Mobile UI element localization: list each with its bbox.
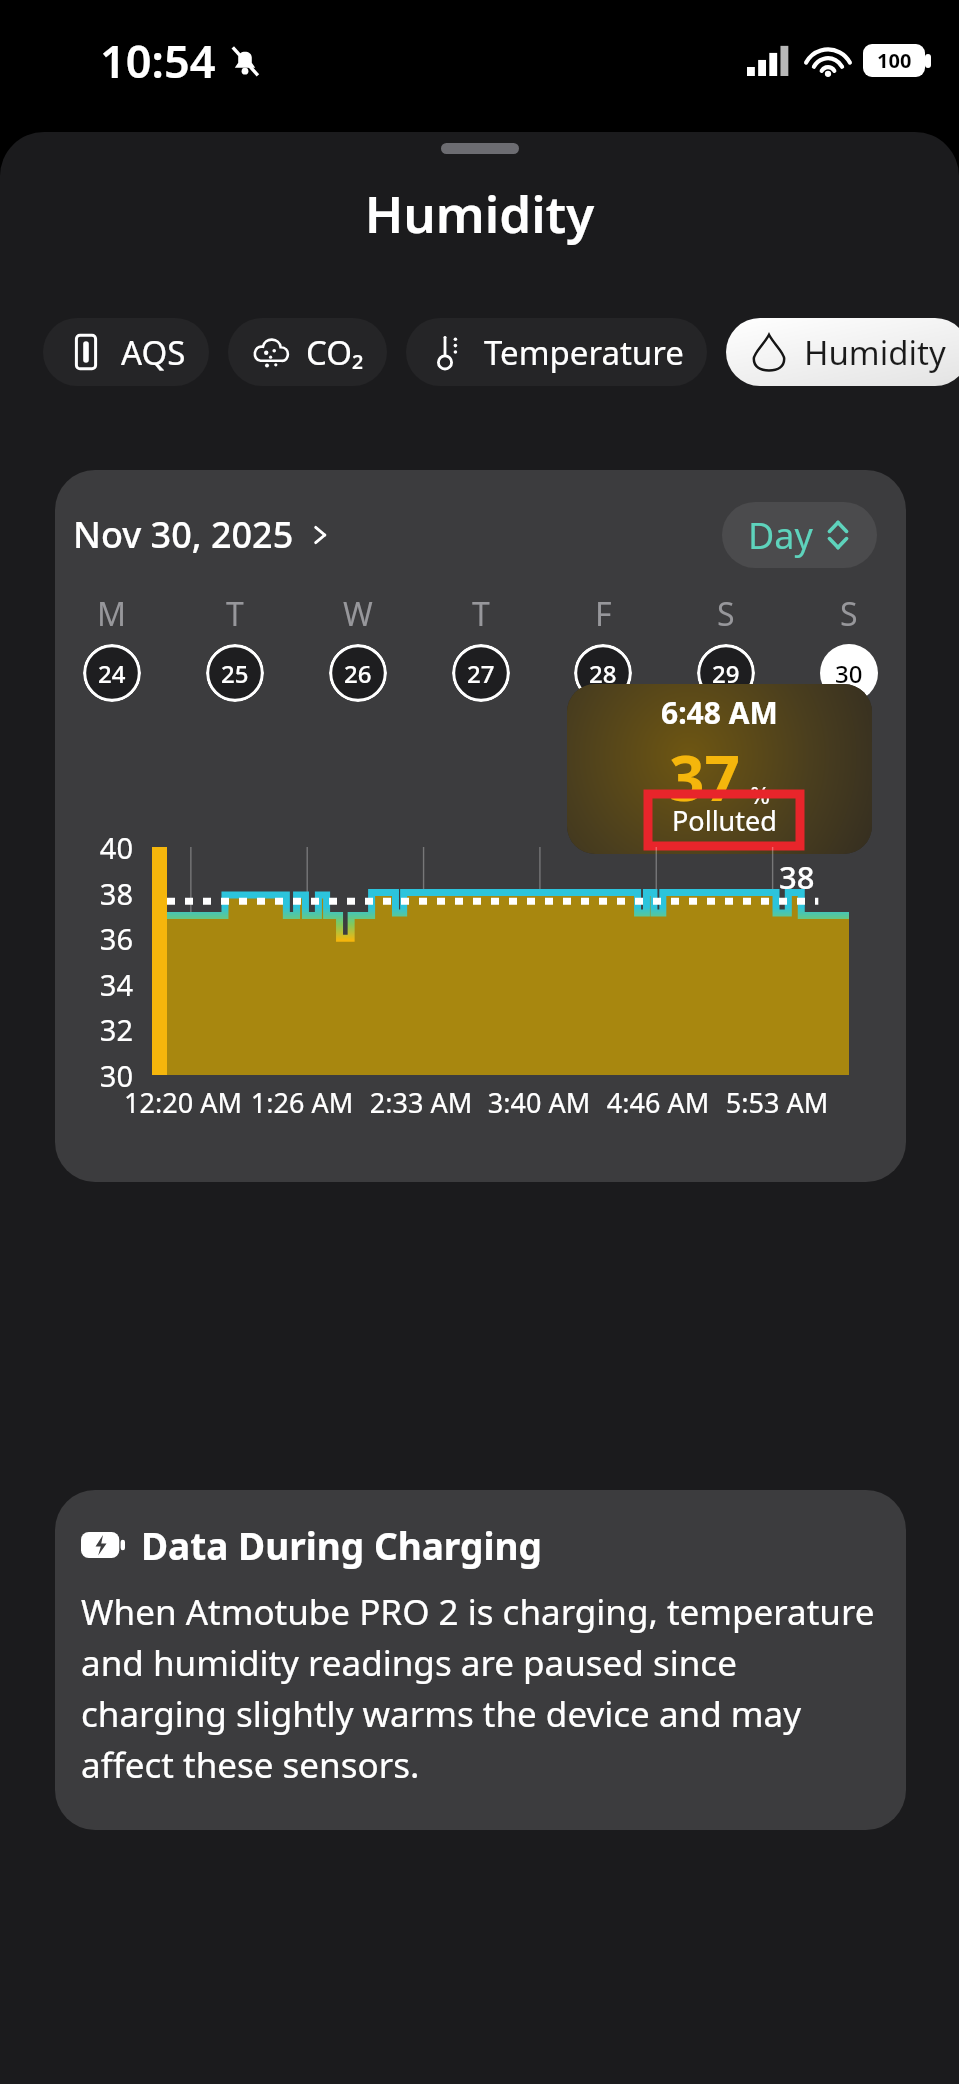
- staticText: 38: [75, 874, 133, 913]
- staticText: Humidity: [0, 178, 959, 247]
- staticText: 100: [877, 47, 912, 74]
- staticText: When Atmotube PRO 2 is charging, tempera…: [81, 1588, 880, 1788]
- staticText: 6:48 AM: [661, 692, 778, 733]
- staticText: 37: [669, 735, 740, 819]
- other: Charging: [81, 1532, 125, 1558]
- staticText: 30: [835, 657, 863, 690]
- staticText: Day: [748, 511, 813, 560]
- staticText: S: [840, 592, 858, 636]
- staticText: 24: [98, 657, 126, 690]
- staticText: CO₂: [306, 330, 364, 375]
- button[interactable]: Humidity: [726, 318, 959, 386]
- staticText: Temperature: [484, 330, 684, 375]
- staticText: 10:54: [100, 30, 216, 91]
- staticText: 26: [344, 657, 372, 690]
- staticText: 28: [589, 657, 617, 690]
- staticText: 3:40 AM: [469, 1084, 609, 1121]
- button[interactable]: W: [313, 592, 403, 702]
- button[interactable]: Temperature: [406, 318, 707, 386]
- button[interactable]: T: [190, 592, 280, 702]
- staticText: 38: [779, 856, 815, 898]
- staticText: S: [717, 592, 735, 636]
- button[interactable]: S: [681, 592, 771, 702]
- staticText: Polluted: [672, 802, 777, 839]
- staticText: T: [472, 592, 490, 636]
- staticText: 25: [221, 657, 249, 690]
- staticText: 1:26 AM: [232, 1084, 372, 1121]
- staticText: Humidity: [804, 330, 946, 375]
- button[interactable]: Charging: [55, 1490, 906, 1830]
- button[interactable]: T: [436, 592, 526, 702]
- staticText: 34: [75, 965, 133, 1004]
- button[interactable]: M: [67, 592, 157, 702]
- staticText: 27: [467, 657, 495, 690]
- staticText: 4:46 AM: [588, 1084, 728, 1121]
- staticText: 5:53 AM: [707, 1084, 847, 1121]
- button[interactable]: Nov 30, 2025: [67, 504, 338, 565]
- button[interactable]: CO₂: [228, 318, 387, 386]
- button[interactable]: F: [558, 592, 648, 702]
- staticText: T: [226, 592, 244, 636]
- staticText: %: [750, 778, 770, 811]
- staticText: F: [595, 592, 612, 636]
- staticText: 29: [712, 657, 740, 690]
- staticText: Data During Charging: [141, 1520, 542, 1570]
- staticText: M: [97, 592, 127, 636]
- staticText: 36: [75, 919, 133, 958]
- button[interactable]: Day: [722, 502, 877, 568]
- button[interactable]: S: [804, 592, 894, 702]
- staticText: Nov 30, 2025: [73, 510, 294, 559]
- staticText: W: [343, 592, 373, 636]
- button[interactable]: AQS: [43, 318, 209, 386]
- staticText: AQS: [121, 330, 186, 375]
- staticText: 12:20 AM: [113, 1084, 253, 1121]
- staticText: 2:33 AM: [351, 1084, 491, 1121]
- staticText: 32: [75, 1010, 133, 1049]
- staticText: 40: [75, 828, 133, 867]
- staticText: 30: [75, 1056, 133, 1095]
- button[interactable]: 6:48 AM: [567, 684, 872, 854]
